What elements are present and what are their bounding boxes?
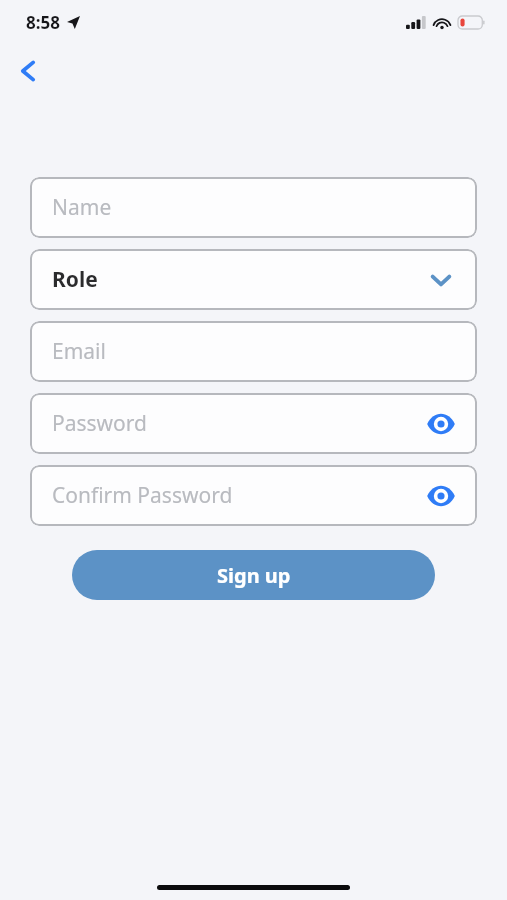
staticText: Role [52, 265, 423, 294]
staticText: Sign up [217, 562, 291, 589]
button[interactable]: Open role list [423, 262, 459, 298]
staticText: 8:58 [26, 11, 60, 34]
button[interactable]: Email [30, 321, 477, 382]
button[interactable]: Name [30, 177, 477, 238]
button[interactable]: Back [6, 49, 50, 93]
button[interactable]: Password [30, 393, 477, 454]
staticText: Email [52, 337, 459, 366]
button[interactable]: Show password [423, 478, 459, 514]
button[interactable]: Sign up [72, 550, 435, 600]
button[interactable]: Show password [423, 406, 459, 442]
button[interactable]: Confirm Password [30, 465, 477, 526]
staticText: Password [52, 409, 423, 438]
staticText: Confirm Password [52, 481, 423, 510]
staticText: Name [52, 193, 459, 222]
button[interactable]: Role [30, 249, 477, 310]
